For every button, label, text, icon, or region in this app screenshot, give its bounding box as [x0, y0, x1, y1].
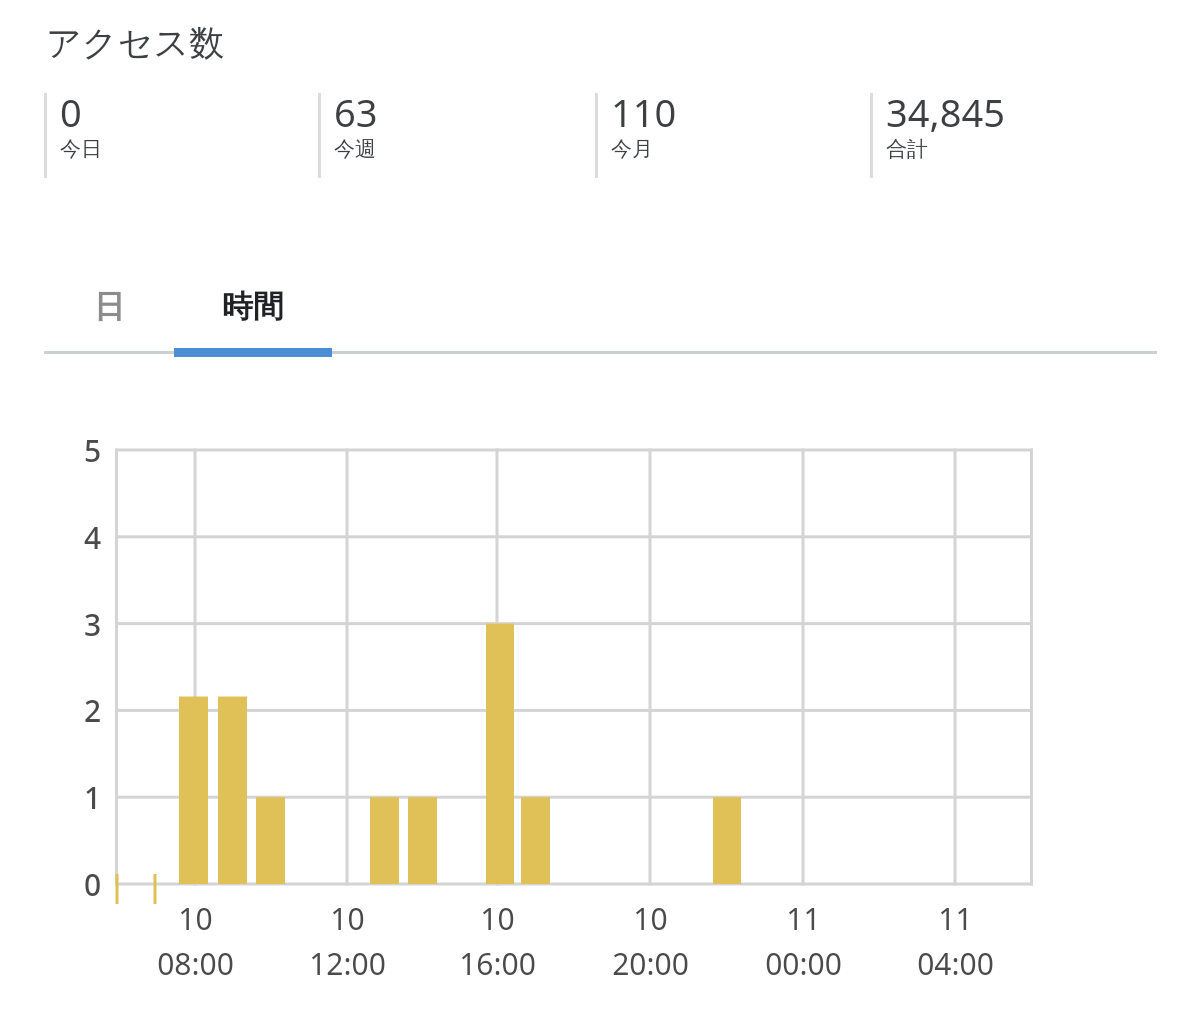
staticText: 5: [84, 430, 102, 471]
staticText: 今日: [60, 136, 102, 162]
button[interactable]: 110: [595, 93, 845, 178]
staticText: 10 12:00: [309, 898, 386, 983]
staticText: 今月: [611, 136, 653, 162]
staticText: 2: [84, 690, 102, 731]
staticText: 時間: [222, 287, 284, 326]
staticText: 110: [611, 86, 677, 138]
staticText: 34,845: [886, 86, 1005, 138]
button[interactable]: 34,845: [870, 93, 1120, 178]
button[interactable]: 日: [44, 264, 174, 348]
staticText: 10 16:00: [459, 898, 536, 983]
staticText: 10 08:00: [157, 898, 234, 983]
staticText: 0: [84, 864, 102, 905]
staticText: 11 04:00: [917, 898, 994, 983]
staticText: 11 00:00: [765, 898, 842, 983]
staticText: 4: [84, 517, 102, 558]
staticText: 今週: [334, 136, 376, 162]
staticText: 10 20:00: [612, 898, 689, 983]
staticText: 日: [94, 287, 125, 326]
button[interactable]: 63: [318, 93, 568, 178]
staticText: 0: [60, 86, 82, 138]
staticText: 1: [84, 777, 102, 818]
staticText: 合計: [886, 136, 928, 162]
button[interactable]: 時間: [174, 264, 332, 348]
staticText: 3: [84, 604, 102, 645]
button[interactable]: 0: [44, 93, 294, 178]
staticText: アクセス数: [46, 21, 225, 65]
staticText: 63: [334, 86, 378, 138]
